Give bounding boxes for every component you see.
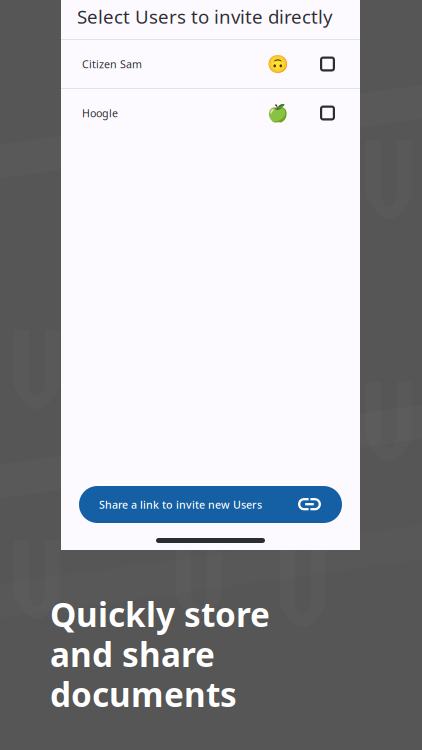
staticText: and share [50, 632, 215, 676]
button[interactable]: Hoogle [61, 89, 360, 137]
staticText: 🙃 [267, 54, 289, 74]
button[interactable]: Citizen Sam [61, 40, 360, 88]
staticText: Select Users to invite directly [77, 4, 333, 29]
staticText: 🍏 [267, 103, 289, 123]
staticText: Quickly store [50, 592, 270, 636]
staticText: Citizen Sam [82, 57, 142, 71]
staticText: Share a link to invite new Users [99, 497, 262, 512]
staticText: Hoogle [82, 106, 118, 120]
button[interactable]: Share a link to invite new Users [79, 486, 342, 523]
staticText: documents [50, 672, 237, 716]
